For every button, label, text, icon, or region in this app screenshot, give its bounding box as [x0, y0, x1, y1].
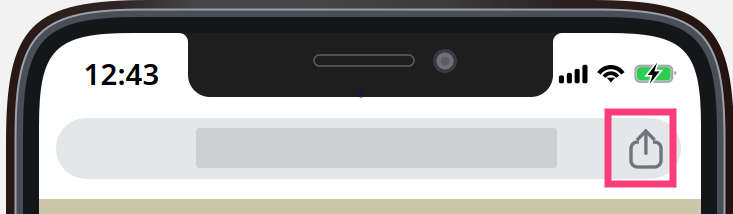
staticText: 12:43	[83, 54, 159, 93]
